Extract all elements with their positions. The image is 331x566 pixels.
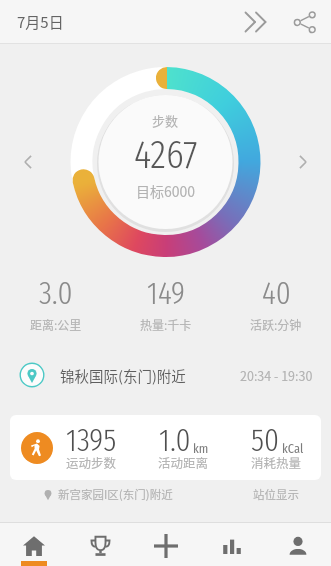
staticText: 活跃:分钟 bbox=[250, 316, 302, 333]
button[interactable]: Previous day bbox=[8, 142, 48, 182]
staticText: 4267 bbox=[134, 131, 198, 179]
button[interactable]: 3.0 bbox=[0, 274, 111, 333]
button[interactable]: 新宫家园I区(东门)附近 bbox=[43, 480, 299, 509]
staticText: 运动步数 bbox=[66, 453, 117, 471]
staticText: 1395 bbox=[66, 421, 117, 459]
staticText: 新宫家园I区(东门)附近 bbox=[58, 486, 173, 503]
staticText: 活动距离 bbox=[158, 453, 209, 471]
staticText: 50 bbox=[251, 421, 280, 459]
button[interactable]: Next day bbox=[283, 142, 323, 182]
staticText: 距离:公里 bbox=[30, 316, 82, 333]
staticText: 40 bbox=[262, 274, 291, 312]
button[interactable]: Profile bbox=[265, 523, 331, 566]
button[interactable]: Achievements bbox=[67, 523, 133, 566]
staticText: 目标6000 bbox=[136, 181, 196, 201]
staticText: 3.0 bbox=[39, 274, 73, 312]
button[interactable]: 锦秋国际(东门)附近 bbox=[19, 358, 313, 392]
staticText: 7月5日 bbox=[17, 11, 64, 33]
button[interactable]: Fast forward bbox=[235, 1, 277, 43]
button[interactable]: 1395 bbox=[10, 415, 321, 480]
staticText: 站位显示 bbox=[253, 486, 299, 503]
staticText: 步数 bbox=[152, 111, 179, 130]
staticText: 热量:千卡 bbox=[140, 316, 192, 333]
button[interactable]: Share bbox=[282, 0, 328, 43]
staticText: 1.0 bbox=[159, 421, 191, 459]
staticText: 消耗热量 bbox=[251, 453, 302, 471]
button[interactable]: Statistics bbox=[199, 523, 265, 566]
button[interactable]: Add bbox=[133, 523, 199, 566]
staticText: kCal bbox=[282, 440, 304, 456]
staticText: 149 bbox=[147, 274, 185, 312]
button[interactable]: 149 bbox=[111, 274, 221, 333]
button[interactable]: 40 bbox=[221, 274, 331, 333]
staticText: 锦秋国际(东门)附近 bbox=[60, 365, 186, 386]
staticText: km bbox=[193, 440, 209, 456]
staticText: 20:34 - 19:30 bbox=[240, 366, 313, 384]
button[interactable]: Home bbox=[0, 523, 67, 566]
